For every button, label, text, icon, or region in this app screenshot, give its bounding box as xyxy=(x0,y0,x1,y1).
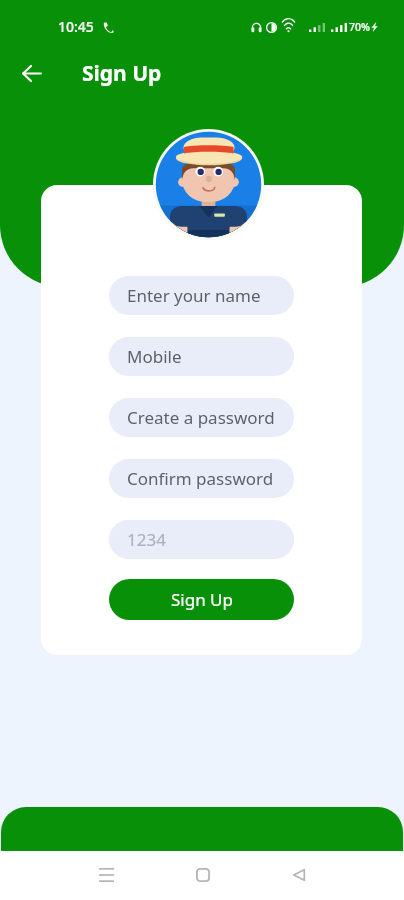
staticText: 1234 xyxy=(127,528,166,551)
button[interactable]: Home xyxy=(179,851,227,899)
button[interactable]: Back xyxy=(275,851,323,899)
button[interactable]: Confirm password xyxy=(109,459,294,498)
button[interactable]: Menu xyxy=(82,851,130,899)
staticText: 70% xyxy=(349,20,370,34)
staticText: Create a password xyxy=(127,406,275,429)
staticText: Confirm password xyxy=(127,467,274,490)
staticText: Mobile xyxy=(127,345,182,368)
button[interactable]: Sign Up xyxy=(109,579,294,620)
button[interactable]: Create a password xyxy=(109,398,294,437)
button[interactable]: Back xyxy=(10,51,54,95)
button[interactable]: 1234 xyxy=(109,520,294,559)
button[interactable]: Mobile xyxy=(109,337,294,376)
button[interactable]: Bottom bar xyxy=(1,807,403,851)
staticText: 10:45 xyxy=(58,17,94,36)
staticText: Sign Up xyxy=(82,59,162,88)
staticText: Sign Up xyxy=(171,588,233,611)
button[interactable]: Enter your name xyxy=(109,276,294,315)
staticText: Enter your name xyxy=(127,284,261,307)
